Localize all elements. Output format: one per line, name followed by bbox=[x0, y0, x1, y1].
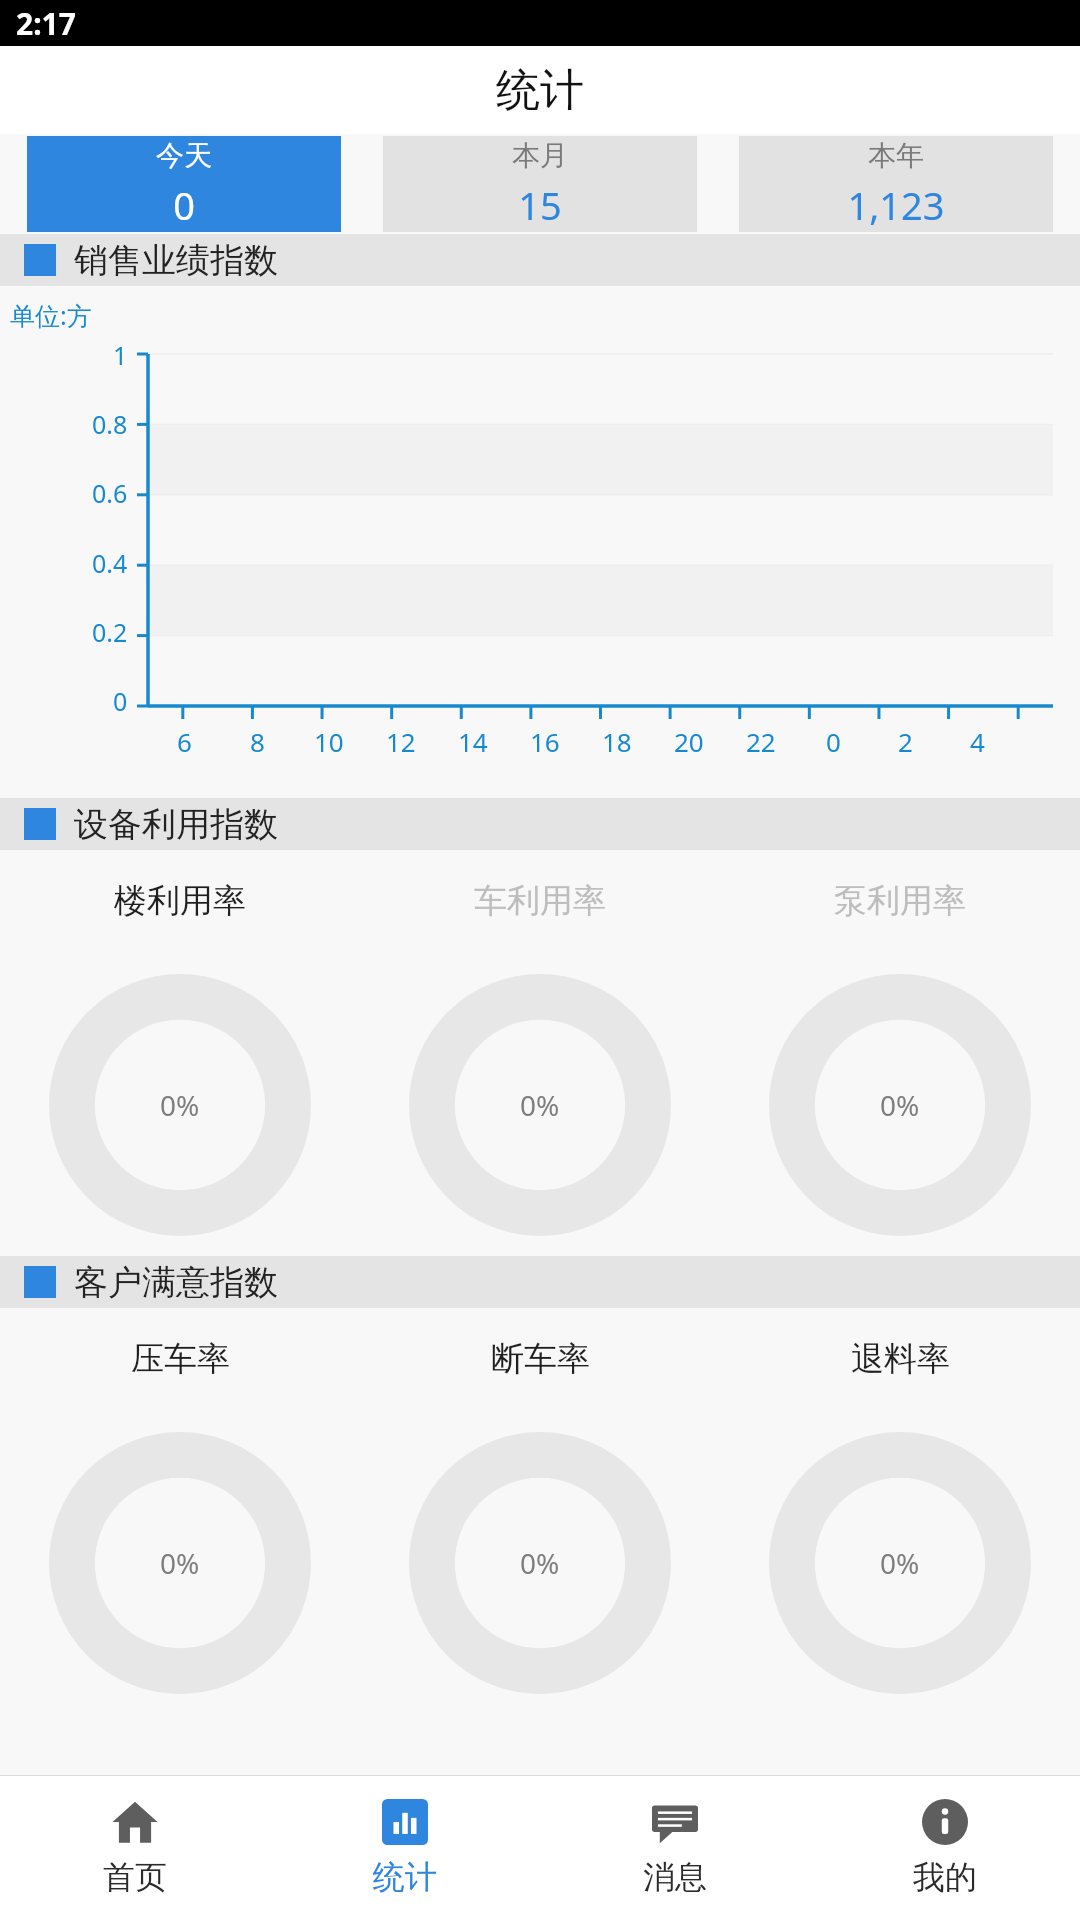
staticText: 销售业绩指数 bbox=[74, 239, 278, 282]
button[interactable]: 0% bbox=[720, 970, 1080, 1240]
button[interactable]: 统计 bbox=[270, 1776, 540, 1920]
button[interactable]: 0% bbox=[720, 1428, 1080, 1698]
staticText: 22 bbox=[746, 724, 776, 759]
staticText: 压车率 bbox=[131, 1338, 230, 1380]
staticText: 15 bbox=[518, 179, 562, 231]
button[interactable]: 0% bbox=[0, 970, 360, 1240]
staticText: 8 bbox=[250, 724, 265, 759]
button[interactable]: 消息 bbox=[540, 1776, 810, 1920]
other: 首页 bbox=[112, 1799, 158, 1845]
staticText: 18 bbox=[602, 724, 632, 759]
staticText: 断车率 bbox=[491, 1338, 590, 1380]
staticText: 0 bbox=[113, 684, 128, 718]
staticText: 我的 bbox=[913, 1857, 977, 1897]
staticText: 12 bbox=[386, 724, 416, 759]
other: 我的 bbox=[922, 1799, 968, 1845]
staticText: 统计 bbox=[496, 63, 584, 118]
staticText: 10 bbox=[314, 724, 344, 759]
button[interactable]: 0% bbox=[360, 1428, 720, 1698]
button[interactable]: 0% bbox=[0, 1428, 360, 1698]
staticText: 设备利用指数 bbox=[74, 803, 278, 846]
staticText: 首页 bbox=[103, 1857, 167, 1897]
staticText: 2:17 bbox=[16, 3, 76, 44]
staticText: 0.2 bbox=[92, 615, 128, 649]
button[interactable]: 本月 bbox=[383, 136, 697, 232]
staticText: 今天 bbox=[156, 138, 212, 173]
staticText: 0% bbox=[160, 1086, 200, 1124]
staticText: 0.4 bbox=[92, 546, 128, 580]
staticText: 0.8 bbox=[92, 407, 128, 441]
staticText: 单位:方 bbox=[10, 298, 92, 332]
staticText: 4 bbox=[970, 724, 985, 759]
staticText: 14 bbox=[458, 724, 488, 759]
staticText: 0% bbox=[520, 1544, 560, 1582]
staticText: 0 bbox=[826, 724, 841, 759]
staticText: 0% bbox=[160, 1544, 200, 1582]
staticText: 0 bbox=[173, 179, 195, 231]
button[interactable]: 首页 bbox=[0, 1776, 270, 1920]
staticText: 车利用率 bbox=[474, 880, 606, 922]
staticText: 0.6 bbox=[92, 476, 128, 510]
button[interactable]: 0% bbox=[360, 970, 720, 1240]
staticText: 16 bbox=[530, 724, 560, 759]
staticText: 客户满意指数 bbox=[74, 1261, 278, 1304]
staticText: 1 bbox=[113, 338, 128, 372]
staticText: 1,123 bbox=[847, 179, 945, 231]
staticText: 本年 bbox=[868, 138, 924, 173]
staticText: 楼利用率 bbox=[114, 880, 246, 922]
staticText: 泵利用率 bbox=[834, 880, 966, 922]
button[interactable]: 我的 bbox=[810, 1776, 1080, 1920]
staticText: 20 bbox=[674, 724, 704, 759]
button[interactable]: 本年 bbox=[739, 136, 1053, 232]
staticText: 退料率 bbox=[851, 1338, 950, 1380]
staticText: 本月 bbox=[512, 138, 568, 173]
other: 消息 bbox=[652, 1799, 698, 1845]
staticText: 0% bbox=[880, 1086, 920, 1124]
button[interactable]: 今天 bbox=[27, 136, 341, 232]
staticText: 0% bbox=[880, 1544, 920, 1582]
staticText: 统计 bbox=[373, 1857, 437, 1897]
staticText: 6 bbox=[177, 724, 192, 759]
staticText: 消息 bbox=[643, 1857, 707, 1897]
staticText: 2 bbox=[898, 724, 913, 759]
staticText: 0% bbox=[520, 1086, 560, 1124]
other: 统计 bbox=[382, 1799, 428, 1845]
